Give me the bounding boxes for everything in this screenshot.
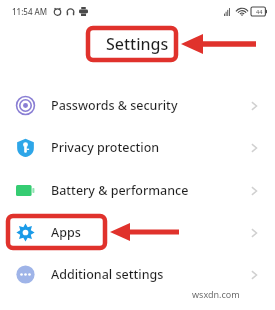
staticText: Battery & performance	[51, 182, 189, 199]
button[interactable]: Apps	[0, 215, 275, 250]
staticText: Additional settings	[51, 266, 164, 283]
staticText: Privacy protection	[51, 139, 160, 156]
button[interactable]: Passwords & security	[0, 88, 275, 123]
staticText: Settings	[106, 33, 169, 55]
staticText: 44	[256, 8, 263, 15]
staticText: 11:54 AM	[12, 6, 48, 17]
button[interactable]: Battery & performance	[0, 173, 275, 208]
button[interactable]: Additional settings	[0, 257, 275, 292]
staticText: Apps	[51, 224, 81, 241]
button[interactable]: Privacy protection	[0, 130, 275, 165]
staticText: wsxdn.com	[192, 288, 240, 300]
staticText: Passwords & security	[51, 97, 178, 114]
